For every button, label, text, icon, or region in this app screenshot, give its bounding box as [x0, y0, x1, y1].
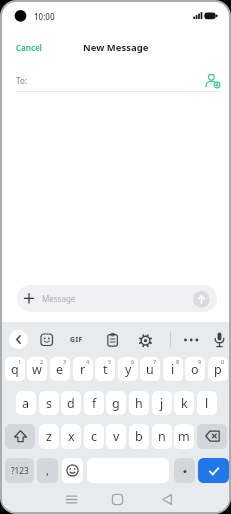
- staticText: j: [160, 395, 164, 412]
- staticText: 5: [108, 358, 112, 365]
- staticText: q: [11, 361, 19, 378]
- staticText: x: [68, 428, 75, 445]
- staticText: ,: [46, 463, 50, 479]
- button[interactable]: a: [16, 391, 36, 415]
- staticText: To:: [16, 75, 27, 86]
- button[interactable]: s: [39, 391, 59, 415]
- button[interactable]: [174, 458, 195, 483]
- staticText: g: [112, 395, 120, 412]
- button[interactable]: z: [39, 424, 59, 449]
- staticText: Message: [42, 293, 76, 304]
- staticText: z: [46, 428, 52, 445]
- button[interactable]: y: [118, 357, 138, 381]
- staticText: ?123: [11, 465, 29, 476]
- staticText: r: [80, 361, 86, 378]
- staticText: u: [146, 361, 154, 378]
- button[interactable]: Cancel: [16, 38, 56, 56]
- button[interactable]: [9, 330, 28, 349]
- button[interactable]: r: [73, 357, 93, 381]
- button[interactable]: [198, 458, 229, 483]
- staticText: 2: [40, 358, 44, 365]
- button[interactable]: [17, 285, 217, 312]
- button[interactable]: l: [197, 391, 217, 415]
- staticText: b: [135, 428, 143, 445]
- button[interactable]: [106, 333, 120, 347]
- staticText: k: [181, 395, 188, 412]
- button[interactable]: e: [50, 357, 70, 381]
- staticText: 10:00: [34, 11, 55, 22]
- staticText: w: [32, 361, 42, 378]
- staticText: 4: [86, 358, 90, 365]
- staticText: 8: [176, 358, 180, 365]
- staticText: New Message: [83, 41, 149, 54]
- staticText: v: [113, 428, 120, 445]
- staticText: a: [22, 395, 30, 412]
- button[interactable]: x: [61, 424, 81, 449]
- button[interactable]: k: [174, 391, 194, 415]
- staticText: t: [103, 361, 108, 378]
- button[interactable]: [40, 333, 54, 347]
- button[interactable]: n: [152, 424, 172, 449]
- staticText: n: [158, 428, 166, 445]
- staticText: GIF: [70, 335, 83, 345]
- staticText: 1: [18, 358, 22, 365]
- button[interactable]: i: [163, 357, 183, 381]
- button[interactable]: f: [84, 391, 104, 415]
- staticText: 3: [63, 358, 67, 365]
- button[interactable]: [5, 424, 35, 449]
- staticText: m: [178, 428, 190, 445]
- button[interactable]: u: [140, 357, 160, 381]
- staticText: l: [205, 395, 209, 412]
- staticText: 7: [153, 358, 157, 365]
- button[interactable]: m: [174, 424, 194, 449]
- button[interactable]: [138, 333, 153, 348]
- staticText: o: [191, 361, 199, 378]
- button[interactable]: h: [129, 391, 149, 415]
- button[interactable]: ?123: [5, 458, 34, 483]
- button[interactable]: [109, 491, 126, 508]
- button[interactable]: q: [5, 357, 25, 381]
- staticText: f: [92, 395, 97, 412]
- staticText: 0: [221, 358, 225, 365]
- button[interactable]: p: [208, 357, 228, 381]
- button[interactable]: d: [61, 391, 81, 415]
- button[interactable]: ,: [37, 458, 58, 483]
- staticText: p: [214, 361, 222, 378]
- staticText: d: [67, 395, 75, 412]
- staticText: c: [91, 428, 98, 445]
- staticText: i: [171, 361, 175, 378]
- button[interactable]: [159, 491, 176, 508]
- staticText: s: [46, 395, 52, 412]
- staticText: y: [125, 361, 132, 378]
- button[interactable]: [64, 491, 81, 508]
- button[interactable]: g: [106, 391, 126, 415]
- button[interactable]: [182, 334, 202, 346]
- button[interactable]: [193, 291, 211, 309]
- staticText: h: [135, 395, 143, 412]
- staticText: 6: [131, 358, 135, 365]
- button[interactable]: t: [95, 357, 115, 381]
- button[interactable]: c: [84, 424, 104, 449]
- staticText: Cancel: [16, 42, 42, 53]
- button[interactable]: [202, 70, 224, 92]
- button[interactable]: [197, 424, 227, 449]
- button[interactable]: j: [152, 391, 172, 415]
- button[interactable]: v: [106, 424, 126, 449]
- button[interactable]: b: [129, 424, 149, 449]
- button[interactable]: w: [27, 357, 47, 381]
- button[interactable]: [212, 331, 227, 349]
- button[interactable]: [62, 458, 83, 483]
- staticText: e: [56, 361, 64, 378]
- button[interactable]: o: [185, 357, 205, 381]
- staticText: 9: [198, 358, 202, 365]
